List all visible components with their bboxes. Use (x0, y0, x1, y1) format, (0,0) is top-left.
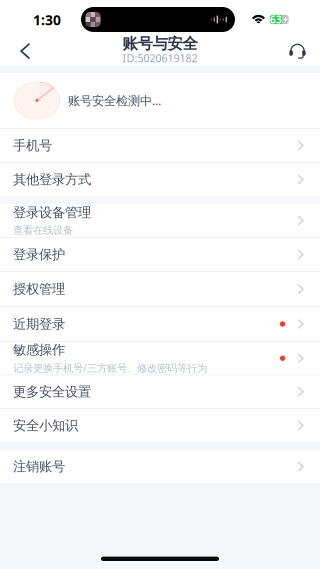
button[interactable]: Back (0, 33, 44, 66)
staticText: 安全小知识 (13, 417, 78, 434)
staticText: 查看在线设备 (13, 224, 73, 237)
staticText: 登录保护 (13, 246, 65, 263)
staticText: 敏感操作 (13, 341, 65, 358)
button[interactable]: 授权管理 (0, 272, 320, 306)
staticText: 记录更换手机号/三方账号、修改密码等行为 (13, 361, 207, 375)
button[interactable]: Customer service (276, 33, 320, 66)
staticText: 更多安全设置 (13, 383, 91, 400)
button[interactable]: 敏感操作 (0, 342, 320, 374)
staticText: 授权管理 (13, 281, 65, 297)
staticText: 1:30 (33, 10, 61, 29)
staticText: 近期登录 (13, 316, 65, 332)
button[interactable]: 近期登录 (0, 307, 320, 341)
button[interactable]: 更多安全设置 (0, 375, 320, 408)
staticText: 其他登录方式 (13, 171, 91, 188)
button[interactable]: 其他登录方式 (0, 163, 320, 196)
button[interactable]: 安全小知识 (0, 409, 320, 442)
staticText: 账号安全检测中... (68, 92, 161, 109)
staticText: 登录设备管理 (13, 204, 91, 221)
button[interactable]: 手机号 (0, 129, 320, 162)
staticText: 账号与安全 (122, 34, 197, 53)
button[interactable]: 登录保护 (0, 238, 320, 271)
staticText: 手机号 (13, 137, 52, 154)
staticText: ID:5020619182 (122, 51, 197, 65)
button[interactable]: 登录设备管理 (0, 204, 320, 237)
button[interactable]: 注销账号 (0, 450, 320, 483)
staticText: 注销账号 (13, 458, 65, 475)
staticText: 63 (270, 13, 282, 26)
